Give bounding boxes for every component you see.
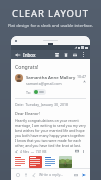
button[interactable]: Attachment options (81, 149, 86, 154)
button[interactable]: Back (14, 51, 21, 58)
button[interactable]: Attach file (30, 171, 37, 178)
button[interactable]: Send (80, 171, 87, 178)
button[interactable] (29, 156, 42, 168)
button[interactable]: Save all (74, 148, 80, 154)
staticText: 10:47 (77, 74, 86, 79)
button[interactable]: Archive (53, 51, 60, 58)
button[interactable]: Camera (72, 171, 79, 178)
staticText: Samantha Anne Mallory (26, 74, 76, 80)
staticText: Write a reply... (39, 172, 64, 177)
button[interactable] (33, 89, 46, 95)
staticText: To: (26, 90, 31, 95)
staticText: Heartly congratulations on your recent m… (15, 118, 86, 148)
staticText: Congrats! (15, 63, 39, 70)
staticText: CLEAR LAYOUT (12, 7, 89, 20)
button[interactable] (14, 156, 27, 168)
staticText: samanta@gmail.com (26, 81, 62, 86)
staticText: Flat design for a sleek and usable inter… (8, 23, 94, 29)
button[interactable]: Voice (22, 171, 29, 178)
button[interactable]: More options (80, 51, 87, 58)
staticText: Date: Tuesday, January 30, 2018 (15, 102, 68, 107)
staticText: Dear Eleanor! (15, 111, 40, 116)
button[interactable]: Samantha Anne Mallory (11, 74, 90, 86)
button[interactable]: Photo attachment (59, 156, 72, 168)
button[interactable]: Delete (62, 51, 69, 58)
staticText: Inbox (23, 52, 36, 58)
button[interactable] (44, 156, 57, 168)
button[interactable]: Mark unread (71, 51, 78, 58)
button[interactable]: Emoji (14, 171, 21, 178)
staticText: 4 files — 741 KB (20, 149, 47, 153)
